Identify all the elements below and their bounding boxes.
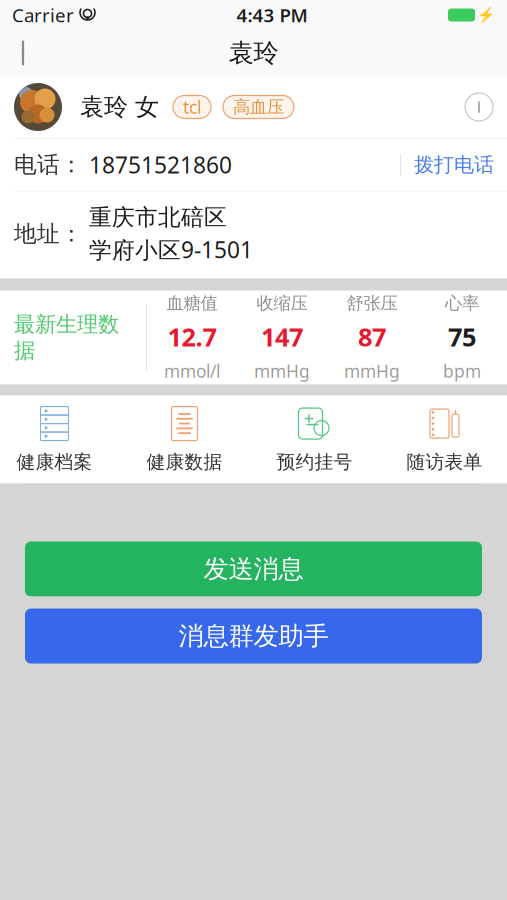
staticText: 舒张压 — [346, 293, 397, 314]
staticText: 高血压 — [233, 96, 284, 118]
staticText: 75 — [448, 320, 476, 353]
staticText: 87 — [358, 320, 386, 353]
staticText: ⚡ — [477, 7, 495, 23]
staticText: mmHg — [344, 359, 400, 382]
staticText: 18751521860 — [89, 150, 232, 180]
button[interactable]: 预约挂号 — [249, 395, 379, 483]
staticText: 袁玲 — [228, 37, 278, 68]
staticText: 147 — [261, 320, 303, 353]
button[interactable]: 健康档案 — [0, 395, 119, 483]
staticText: Carrier — [12, 3, 74, 27]
staticText: mmol/l — [164, 359, 220, 382]
staticText: 电话： — [14, 151, 83, 179]
staticText: 发送消息 — [203, 553, 303, 585]
staticText: 健康数据 — [146, 451, 222, 473]
staticText: tcl — [183, 95, 201, 118]
staticText: 随访表单 — [406, 451, 482, 473]
button[interactable]: 拨打电话 — [401, 141, 507, 189]
staticText: 地址： — [14, 220, 83, 248]
staticText: 拨打电话 — [414, 152, 494, 177]
button[interactable]: 随访表单 — [379, 395, 507, 483]
button[interactable]: Back — [0, 30, 46, 76]
staticText: 消息群发助手 — [178, 620, 328, 652]
staticText: 收缩压 — [256, 293, 307, 314]
staticText: mmHg — [254, 359, 310, 382]
staticText: 预约挂号 — [276, 451, 352, 473]
button[interactable]: 健康数据 — [119, 395, 249, 483]
staticText: 12.7 — [167, 320, 216, 353]
staticText: 袁玲 女 — [80, 92, 159, 122]
staticText: 血糖值 — [166, 293, 217, 314]
button[interactable]: 发送消息 — [25, 541, 482, 596]
button[interactable]: 袁玲 女 — [0, 76, 507, 138]
staticText: 心率 — [445, 293, 479, 314]
staticText: bpm — [443, 359, 481, 382]
staticText: 4:43 PM — [236, 3, 307, 27]
staticText: 重庆市北碚区 — [89, 204, 227, 231]
staticText: 健康档案 — [16, 451, 92, 473]
button[interactable]: 消息群发助手 — [25, 608, 482, 663]
staticText: 最新生理数据 — [14, 311, 119, 364]
staticText: 学府小区9-1501 — [89, 234, 253, 264]
